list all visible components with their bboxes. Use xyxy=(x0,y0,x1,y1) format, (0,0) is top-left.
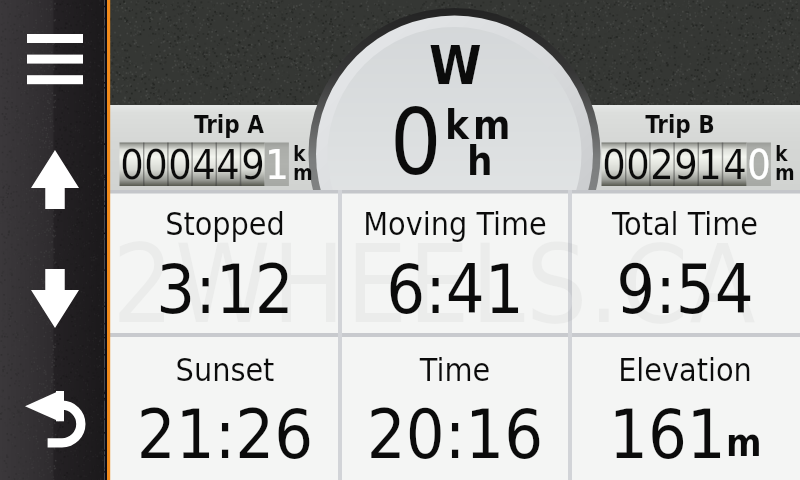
staticText: Time xyxy=(340,351,570,388)
button[interactable]: Scroll up xyxy=(31,150,79,209)
staticText: 161 xyxy=(609,395,726,474)
staticText: Total Time xyxy=(570,205,800,242)
staticText: 0 xyxy=(747,141,771,189)
staticText: 0 xyxy=(626,141,650,189)
staticText: 21:26 xyxy=(110,395,340,474)
button[interactable] xyxy=(112,106,312,189)
button[interactable] xyxy=(340,337,570,480)
staticText: m xyxy=(775,161,795,185)
staticText: Moving Time xyxy=(340,205,570,242)
staticText: 0 xyxy=(120,141,144,189)
staticText: h xyxy=(467,138,493,185)
staticText: 4 xyxy=(723,141,747,189)
staticText: 3:12 xyxy=(110,250,340,329)
staticText: Trip A xyxy=(114,111,344,139)
staticText: 4 xyxy=(216,141,240,189)
staticText: Sunset xyxy=(110,351,340,388)
staticText: 0 xyxy=(144,141,168,189)
staticText: 1 xyxy=(265,141,289,189)
staticText: 20:16 xyxy=(340,395,570,474)
staticText: Stopped xyxy=(110,205,340,242)
staticText: m xyxy=(726,421,762,465)
staticText: Elevation xyxy=(570,351,800,388)
button[interactable] xyxy=(110,337,340,480)
button[interactable] xyxy=(340,194,570,334)
staticText: 0 xyxy=(390,90,442,195)
button[interactable] xyxy=(110,194,340,334)
staticText: k xyxy=(293,142,306,166)
staticText: 9 xyxy=(241,141,265,189)
staticText: m xyxy=(473,102,511,149)
staticText: 0 xyxy=(602,141,626,189)
button[interactable] xyxy=(594,106,794,189)
staticText: Trip B xyxy=(565,111,795,139)
staticText: 0 xyxy=(168,141,192,189)
staticText: k xyxy=(775,142,788,166)
staticText: 2 xyxy=(650,141,674,189)
button[interactable]: Back xyxy=(20,384,90,452)
button[interactable] xyxy=(570,337,800,480)
button[interactable]: Scroll down xyxy=(31,269,79,328)
button[interactable]: Menu xyxy=(27,34,83,85)
button[interactable] xyxy=(570,194,800,334)
staticText: m xyxy=(293,161,313,185)
staticText: 9 xyxy=(674,141,698,189)
staticText: 6:41 xyxy=(340,250,570,329)
staticText: 1 xyxy=(698,141,722,189)
staticText: k xyxy=(445,102,469,149)
staticText: 2WHEELS.CA xyxy=(112,222,757,348)
staticText: 9:54 xyxy=(570,250,800,329)
staticText: 4 xyxy=(192,141,216,189)
staticText: W xyxy=(429,35,482,97)
